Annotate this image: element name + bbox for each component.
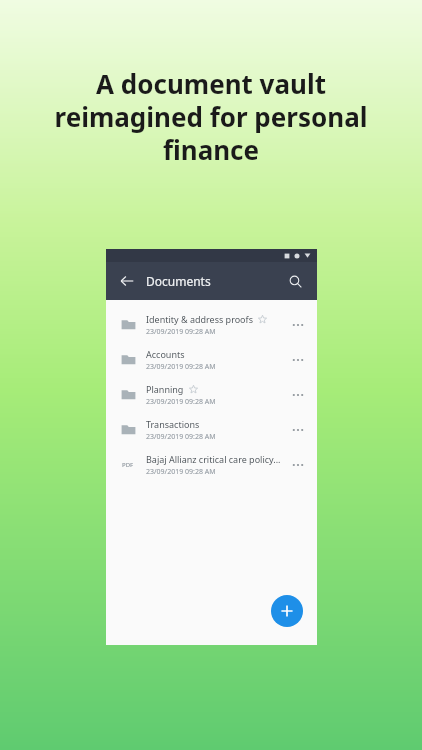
button[interactable]: More options [287, 384, 309, 406]
staticText: 23/09/2019 09:28 AM [146, 432, 216, 442]
button[interactable]: Identity & address proofs [106, 307, 317, 342]
button[interactable]: More options [287, 349, 309, 371]
staticText: Planning [146, 383, 184, 395]
button[interactable]: Back [114, 268, 140, 294]
button[interactable]: More options [287, 419, 309, 441]
button[interactable]: More options [287, 454, 309, 476]
button[interactable]: Accounts [106, 342, 317, 377]
staticText: A document vault reimagined for personal… [34, 66, 388, 168]
staticText: 23/09/2019 09:28 AM [146, 397, 216, 407]
staticText: 23/09/2019 09:28 AM [146, 327, 216, 337]
button[interactable]: Transactions [106, 412, 317, 447]
staticText: 23/09/2019 09:28 AM [146, 467, 216, 477]
staticText: Accounts [146, 348, 185, 360]
staticText: Identity & address proofs [146, 313, 253, 325]
staticText: PDF [122, 461, 134, 469]
staticText: Documents [146, 273, 211, 289]
staticText: Bajaj Allianz critical care policy... [146, 453, 281, 465]
button[interactable]: Planning [106, 377, 317, 412]
button[interactable]: Search [282, 268, 308, 294]
staticText: Transactions [146, 418, 200, 430]
button[interactable]: More options [287, 314, 309, 336]
button[interactable]: PDF [106, 447, 317, 482]
staticText: 23/09/2019 09:28 AM [146, 362, 216, 372]
button[interactable]: Add document [271, 595, 303, 627]
